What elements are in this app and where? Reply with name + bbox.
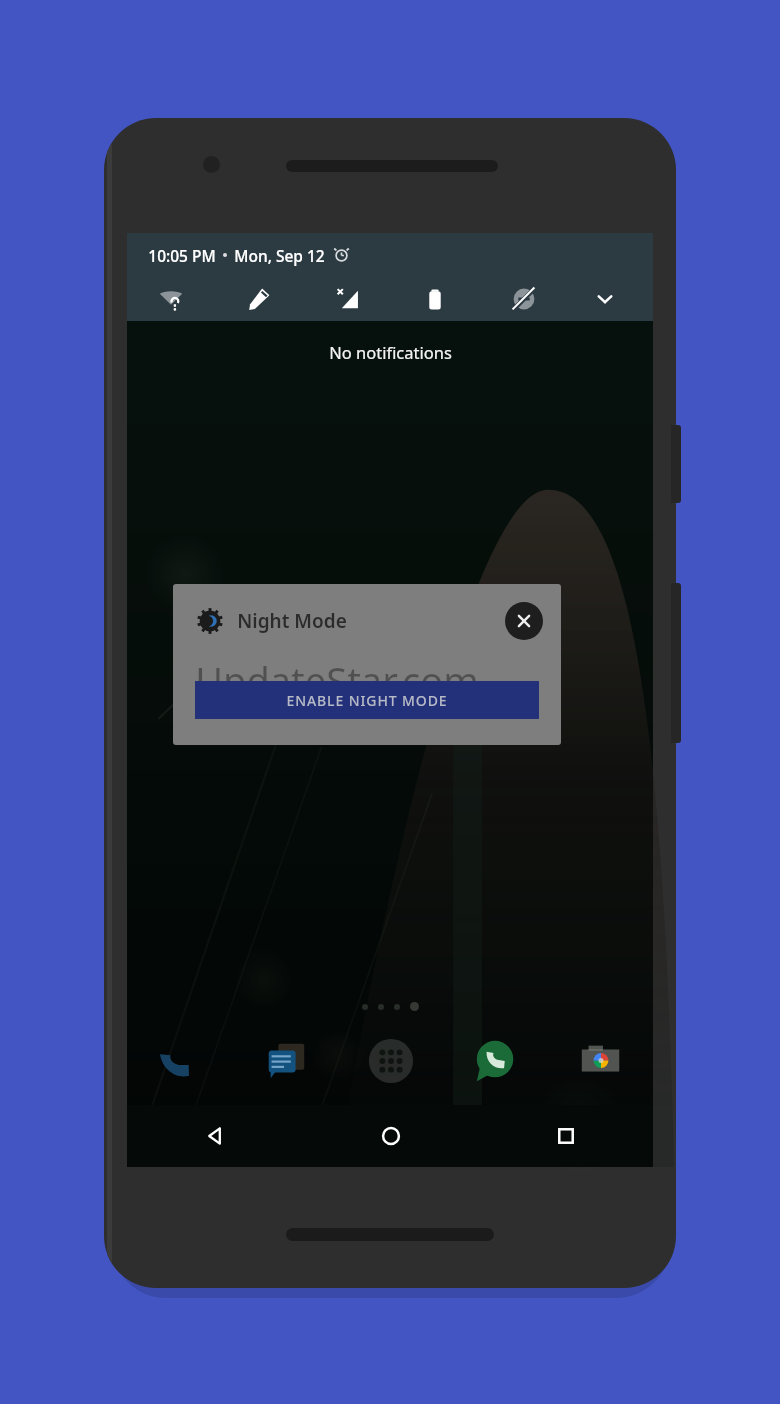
button[interactable]: Back [127, 1105, 303, 1167]
button[interactable]: Recents [478, 1105, 653, 1167]
button[interactable]: WhatsApp [443, 1025, 548, 1097]
staticText: Mon, Sep 12 [234, 245, 325, 266]
button[interactable]: Mobile data off [303, 277, 391, 321]
staticText: UpdateStar.com [195, 654, 479, 706]
button[interactable]: Expand quick settings [569, 277, 641, 321]
button[interactable]: Do not disturb off [479, 277, 569, 321]
staticText: Night Mode [237, 608, 347, 634]
button[interactable]: Flashlight [215, 277, 303, 321]
button[interactable]: Messages [233, 1025, 338, 1097]
button[interactable]: Close [505, 602, 543, 640]
staticText: 10:05 PM [148, 245, 216, 266]
button[interactable]: Wi-Fi not connected [127, 277, 215, 321]
button[interactable]: Battery [391, 277, 479, 321]
staticText: No notifications [329, 341, 452, 363]
button[interactable]: ENABLE NIGHT MODE [195, 681, 539, 719]
button[interactable]: Phone [127, 1025, 233, 1097]
staticText: ENABLE NIGHT MODE [286, 691, 448, 710]
button[interactable]: Home [303, 1105, 478, 1167]
button[interactable]: All apps [338, 1025, 443, 1097]
button[interactable]: Camera [548, 1025, 653, 1097]
